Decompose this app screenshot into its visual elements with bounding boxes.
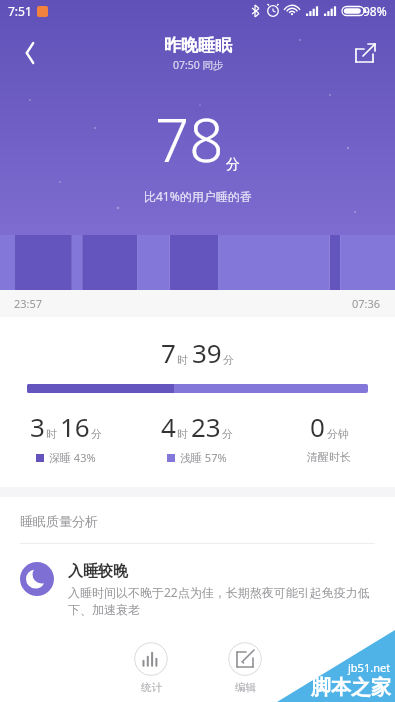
staticText: 分 xyxy=(91,427,102,441)
staticText: 分钟 xyxy=(327,427,349,441)
staticText: 07:36 xyxy=(352,296,381,311)
staticText: 39 xyxy=(192,335,222,370)
button[interactable]: 入睡较晚 xyxy=(0,562,395,617)
staticText: 4 xyxy=(161,409,176,444)
staticText: 时 xyxy=(177,427,188,441)
staticText: 分 xyxy=(226,156,240,174)
staticText: 入睡时间以不晚于22点为佳，长期熬夜可能引起免疫力低下、加速衰老 xyxy=(68,584,377,617)
button[interactable]: 统计 xyxy=(130,638,172,698)
staticText: 分 xyxy=(222,427,233,441)
button[interactable]: Back xyxy=(8,31,52,75)
staticText: 编辑 xyxy=(235,681,256,694)
staticText: jb51.net xyxy=(348,660,391,675)
staticText: 脚本之家 xyxy=(311,675,391,700)
staticText: 23:57 xyxy=(14,296,43,311)
staticText: 昨晚睡眠 xyxy=(164,35,232,56)
staticText: 睡眠质量分析 xyxy=(20,513,98,529)
staticText: 16 xyxy=(60,409,90,444)
staticText: 浅睡 57% xyxy=(180,450,227,465)
staticText: 比41%的用户睡的香 xyxy=(144,188,252,204)
staticText: 入睡较晚 xyxy=(68,562,128,581)
staticText: 07:50 同步 xyxy=(173,58,224,72)
staticText: 7 xyxy=(161,335,176,370)
button[interactable]: Share xyxy=(345,33,385,73)
button[interactable]: 编辑 xyxy=(224,638,266,698)
staticText: 0 xyxy=(310,409,325,444)
staticText: 时 xyxy=(177,353,188,367)
staticText: 清醒时长 xyxy=(307,450,351,464)
staticText: 统计 xyxy=(141,681,162,694)
staticText: 78 xyxy=(155,98,224,180)
staticText: 3 xyxy=(30,409,45,444)
staticText: 7:51 xyxy=(8,3,32,19)
staticText: 分 xyxy=(223,353,234,367)
staticText: 98% xyxy=(363,3,387,19)
staticText: 23 xyxy=(191,409,221,444)
staticText: 时 xyxy=(46,427,57,441)
staticText: 深睡 43% xyxy=(49,450,96,465)
